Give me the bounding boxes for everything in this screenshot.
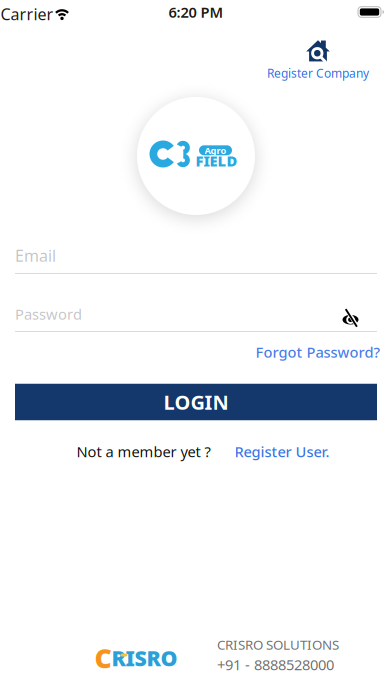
staticText: Register Company <box>267 65 369 81</box>
staticText: +91 - 8888528000 <box>217 655 334 674</box>
staticText: Not a member yet ? <box>76 442 210 461</box>
staticText: Forgot Password? <box>255 342 380 362</box>
staticText: Email <box>15 245 56 266</box>
button[interactable]: Forgot Password? <box>255 342 380 362</box>
staticText: FIELD <box>195 151 237 171</box>
staticText: Password <box>15 304 82 324</box>
staticText: LOGIN <box>163 389 228 415</box>
button[interactable]: Show password <box>341 308 360 328</box>
staticText: Register User. <box>234 442 329 461</box>
button[interactable]: Register User. <box>234 442 329 461</box>
button[interactable]: Register Company <box>267 39 369 81</box>
button[interactable]: LOGIN <box>15 384 377 420</box>
staticText: CRISRO SOLUTIONS <box>217 636 339 653</box>
staticText: 6:20 PM <box>168 2 223 22</box>
staticText: Agro <box>204 144 226 156</box>
staticText: Carrier <box>0 3 53 25</box>
staticText: RISRO <box>111 644 177 672</box>
staticText: C <box>94 640 111 676</box>
